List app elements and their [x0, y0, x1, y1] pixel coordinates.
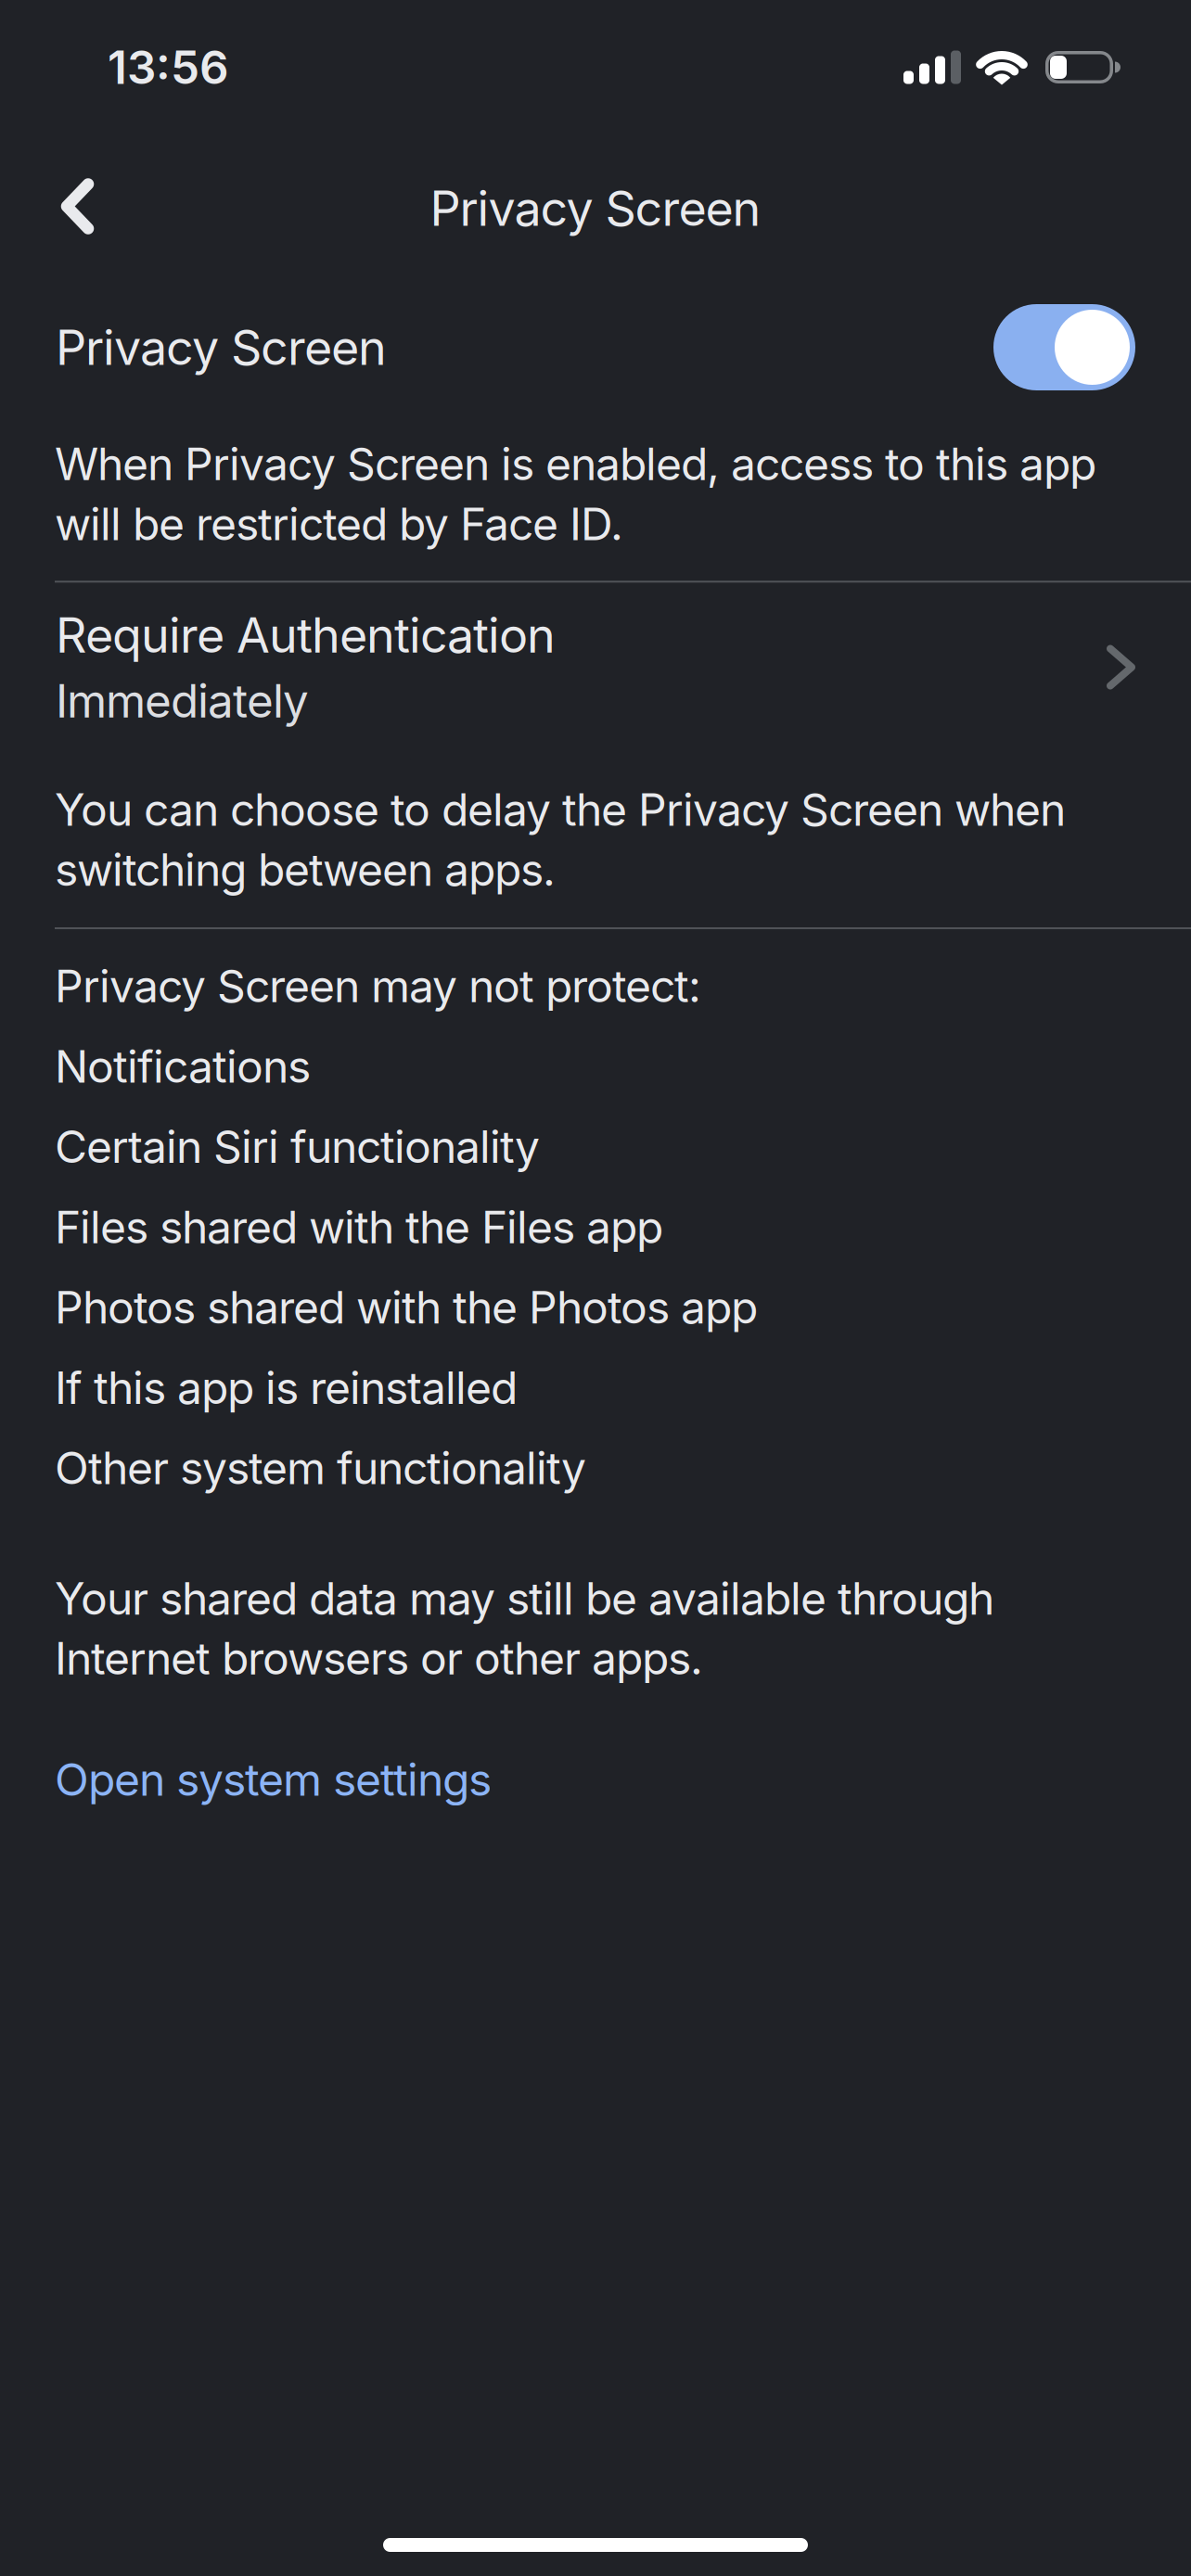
staticText: Immediately — [56, 674, 309, 728]
staticText: Your shared data may still be available … — [55, 1572, 994, 1685]
staticText: Privacy Screen — [430, 180, 761, 237]
staticText: Files shared with the Files app — [55, 1201, 663, 1253]
staticText: You can choose to delay the Privacy Scre… — [55, 783, 1066, 896]
button[interactable]: Privacy Screen — [0, 304, 1191, 390]
staticText: 13:56 — [108, 40, 229, 94]
staticText: Open system settings — [55, 1753, 492, 1806]
staticText: Privacy Screen — [56, 319, 387, 376]
staticText: Other system functionality — [55, 1442, 586, 1494]
staticText: Photos shared with the Photos app — [55, 1281, 758, 1334]
staticText: Require Authentication — [56, 607, 556, 664]
staticText: Notifications — [55, 1040, 311, 1093]
staticText: Privacy Screen may not protect: — [55, 960, 701, 1012]
button[interactable]: Open system settings — [0, 1753, 492, 1806]
button[interactable]: Back — [55, 176, 100, 241]
staticText: Certain Siri functionality — [55, 1120, 540, 1173]
staticText: If this app is reinstalled — [55, 1361, 518, 1414]
button[interactable]: Require Authentication — [0, 607, 1191, 728]
staticText: When Privacy Screen is enabled, access t… — [55, 438, 1096, 550]
